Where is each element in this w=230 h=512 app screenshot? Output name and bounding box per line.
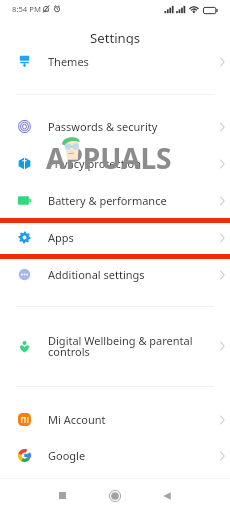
- button[interactable]: Google: [0, 437, 230, 474]
- staticText: Mi Account: [48, 412, 213, 427]
- staticText: Themes: [48, 54, 213, 69]
- staticText: Digital Wellbeing & parental controls: [48, 333, 213, 360]
- staticText: Settings: [90, 29, 141, 45]
- button[interactable]: Mi Account: [0, 401, 230, 438]
- button[interactable]: Digital Wellbeing & parental controls: [0, 322, 230, 370]
- button[interactable]: Back: [140, 479, 194, 512]
- staticText: 8:54 PM: [12, 4, 41, 14]
- staticText: Passwords & security: [48, 119, 213, 134]
- staticText: Additional settings: [48, 267, 213, 282]
- button[interactable]: Battery & performance: [0, 182, 230, 219]
- button[interactable]: Passwords & security: [0, 108, 230, 145]
- button[interactable]: Home: [88, 479, 142, 512]
- staticText: Apps: [48, 230, 213, 245]
- staticText: Battery & performance: [48, 193, 213, 208]
- button[interactable]: Themes: [0, 43, 230, 80]
- button[interactable]: Recent apps: [35, 479, 89, 512]
- staticText: APPUALS: [46, 139, 172, 177]
- button[interactable]: Additional settings: [0, 256, 230, 293]
- button[interactable]: Privacy protection: [0, 145, 230, 182]
- staticText: Privacy protection: [48, 156, 213, 171]
- button[interactable]: Apps: [0, 219, 230, 256]
- staticText: Google: [48, 448, 213, 463]
